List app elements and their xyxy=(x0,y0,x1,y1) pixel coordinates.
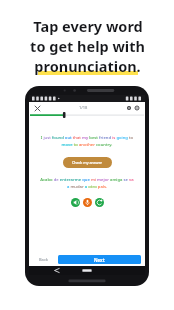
staticText: I just found out that my best friend is … xyxy=(39,135,135,147)
button[interactable]: Slow playback xyxy=(95,198,104,207)
staticText: Tap every word xyxy=(33,16,143,36)
staticText: Check my answer xyxy=(72,160,103,165)
button[interactable]: Check my answer xyxy=(63,157,112,168)
staticText: Back xyxy=(39,257,49,262)
button[interactable]: Help xyxy=(133,104,141,112)
staticText: Next xyxy=(94,257,105,263)
button[interactable]: Settings xyxy=(125,104,133,112)
button[interactable]: Next xyxy=(58,255,141,264)
button[interactable]: Listen xyxy=(71,198,80,207)
staticText: 1/18 xyxy=(79,105,88,110)
button[interactable]: Close xyxy=(33,104,41,112)
staticText: Acabo de enterarme que mi mejor amiga se… xyxy=(39,177,135,189)
button[interactable]: Record xyxy=(83,198,92,207)
staticText: pronunciation. xyxy=(34,56,141,76)
button[interactable]: Back xyxy=(33,255,55,264)
staticText: to get help with xyxy=(30,36,145,56)
